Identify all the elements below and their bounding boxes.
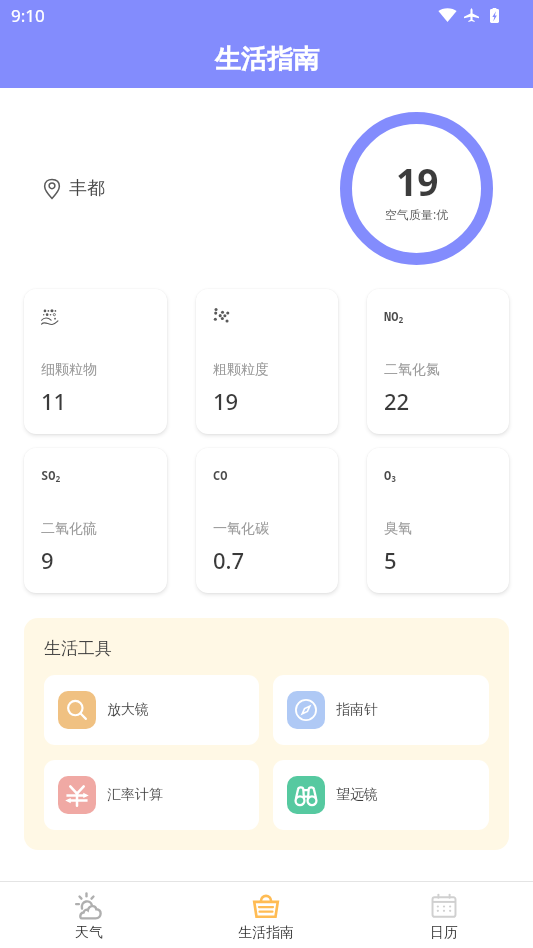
staticText: 臭氧 (384, 520, 412, 538)
staticText: 9 (41, 545, 54, 575)
button[interactable]: O3 (367, 448, 509, 593)
staticText: 9:10 (11, 4, 45, 27)
button[interactable]: 粗颗粒度 (196, 289, 338, 434)
staticText: 粗颗粒度 (213, 361, 269, 379)
staticText: SO2 (41, 467, 61, 484)
staticText: 放大镜 (107, 701, 149, 719)
staticText: 19 (396, 156, 439, 206)
staticText: 二氧化氮 (384, 361, 440, 379)
staticText: 望远镜 (336, 786, 378, 804)
staticText: 二氧化硫 (41, 520, 97, 538)
staticText: 5 (384, 545, 397, 575)
staticText: 日历 (430, 924, 458, 942)
staticText: 丰都 (69, 177, 105, 200)
staticText: O3 (384, 467, 396, 484)
staticText: 生活工具 (44, 638, 112, 659)
staticText: 0.7 (213, 545, 245, 575)
button[interactable]: 放大镜 (44, 675, 259, 745)
button[interactable]: 日历 (355, 882, 533, 948)
staticText: 天气 (75, 924, 103, 942)
staticText: CO (213, 467, 228, 483)
button[interactable]: 指南针 (273, 675, 489, 745)
button[interactable]: NO2 (367, 289, 509, 434)
staticText: 一氧化碳 (213, 520, 269, 538)
button[interactable]: 望远镜 (273, 760, 489, 830)
staticText: 19 (213, 386, 239, 416)
staticText: 指南针 (336, 701, 378, 719)
button[interactable]: 生活指南 (177, 882, 355, 948)
button[interactable]: 汇率计算 (44, 760, 259, 830)
staticText: NO2 (384, 308, 404, 325)
staticText: 空气质量:优 (385, 206, 449, 222)
button[interactable]: 细颗粒物 (24, 289, 167, 434)
staticText: 细颗粒物 (41, 361, 97, 379)
button[interactable]: 丰都 (44, 177, 105, 200)
staticText: 11 (41, 386, 67, 416)
staticText: 生活指南 (238, 924, 294, 942)
staticText: 汇率计算 (107, 786, 163, 804)
staticText: 22 (384, 386, 410, 416)
button[interactable]: 天气 (0, 882, 177, 948)
button[interactable]: 19 (340, 112, 493, 265)
button[interactable]: SO2 (24, 448, 167, 593)
staticText: 生活指南 (215, 43, 319, 76)
button[interactable]: CO (196, 448, 338, 593)
